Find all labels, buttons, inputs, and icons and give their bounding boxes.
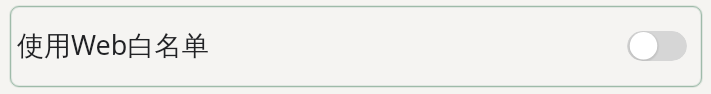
staticText: 使用Web白名单 <box>17 26 209 63</box>
button[interactable]: 使用Web白名单 <box>10 6 702 87</box>
button[interactable]: 使用Web白名单 开关 <box>627 31 687 61</box>
